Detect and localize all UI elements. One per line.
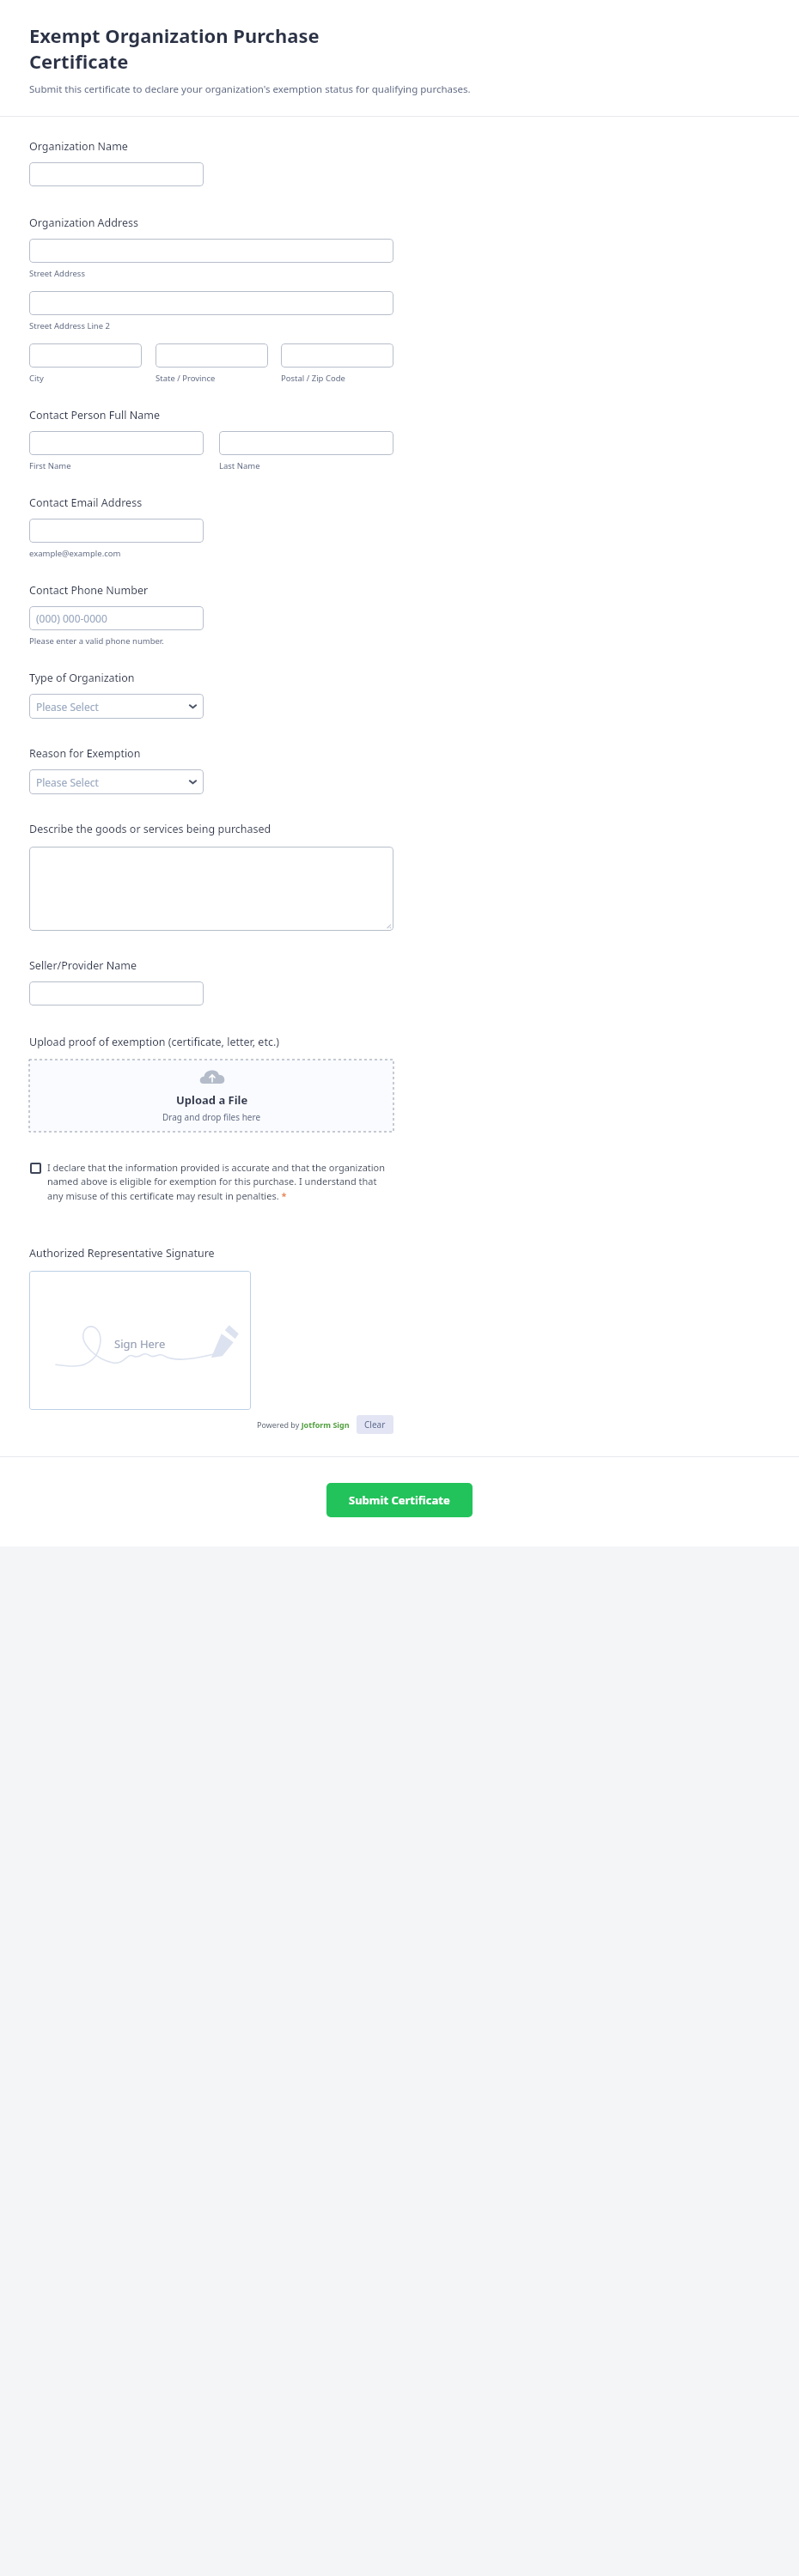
staticText: Exempt Organization Purchase Certificate — [29, 22, 320, 75]
button[interactable] — [29, 519, 204, 543]
button[interactable]: (000) 000-0000 — [29, 606, 204, 630]
staticText: Describe the goods or services being pur… — [29, 822, 271, 836]
button[interactable] — [29, 239, 393, 263]
staticText: City — [29, 373, 44, 384]
button[interactable] — [29, 291, 393, 315]
button[interactable] — [281, 343, 393, 368]
staticText: Sign Here — [114, 1336, 166, 1352]
button[interactable]: I declare checkbox — [29, 1161, 393, 1203]
button[interactable]: Please Select — [29, 694, 204, 719]
button[interactable] — [29, 431, 204, 455]
staticText: Upload a File — [176, 1092, 248, 1108]
button[interactable]: Clear — [357, 1415, 393, 1434]
other: I declare checkbox — [30, 1163, 41, 1174]
staticText: Organization Name — [29, 139, 128, 154]
button[interactable]: Submit Certificate — [326, 1483, 473, 1517]
button[interactable]: Signature pad — [29, 1271, 251, 1410]
button[interactable] — [29, 847, 393, 931]
staticText: Last Name — [219, 460, 260, 471]
button[interactable] — [29, 162, 204, 186]
button[interactable] — [29, 343, 142, 368]
button[interactable] — [156, 343, 268, 368]
staticText: Street Address Line 2 — [29, 320, 110, 331]
staticText: Please Select — [36, 775, 99, 789]
button[interactable]: Upload a File — [29, 1060, 393, 1132]
staticText: Postal / Zip Code — [281, 373, 345, 384]
staticText: First Name — [29, 460, 71, 471]
button[interactable] — [219, 431, 393, 455]
staticText: Organization Address — [29, 216, 138, 230]
staticText: (000) 000-0000 — [36, 611, 107, 625]
button[interactable] — [29, 981, 204, 1005]
staticText: Submit Certificate — [349, 1492, 450, 1508]
staticText: Contact Phone Number — [29, 583, 149, 598]
staticText: Drag and drop files here — [162, 1111, 261, 1123]
staticText: Authorized Representative Signature — [29, 1246, 215, 1261]
staticText: Please Select — [36, 700, 99, 714]
staticText: Submit this certificate to declare your … — [29, 82, 471, 96]
button[interactable]: Please Select — [29, 769, 204, 794]
staticText: Clear — [364, 1419, 386, 1431]
staticText: Please enter a valid phone number. — [29, 635, 164, 647]
staticText: State / Province — [156, 373, 216, 384]
staticText: Seller/Provider Name — [29, 958, 137, 973]
staticText: Upload proof of exemption (certificate, … — [29, 1035, 279, 1049]
staticText: Contact Person Full Name — [29, 408, 160, 422]
staticText: I declare that the information provided … — [47, 1161, 393, 1203]
staticText: Powered by Jotform Sign — [257, 1419, 350, 1430]
staticText: Street Address — [29, 268, 85, 279]
staticText: Contact Email Address — [29, 495, 143, 510]
staticText: Type of Organization — [29, 671, 135, 685]
staticText: example@example.com — [29, 548, 121, 559]
staticText: Reason for Exemption — [29, 746, 141, 761]
